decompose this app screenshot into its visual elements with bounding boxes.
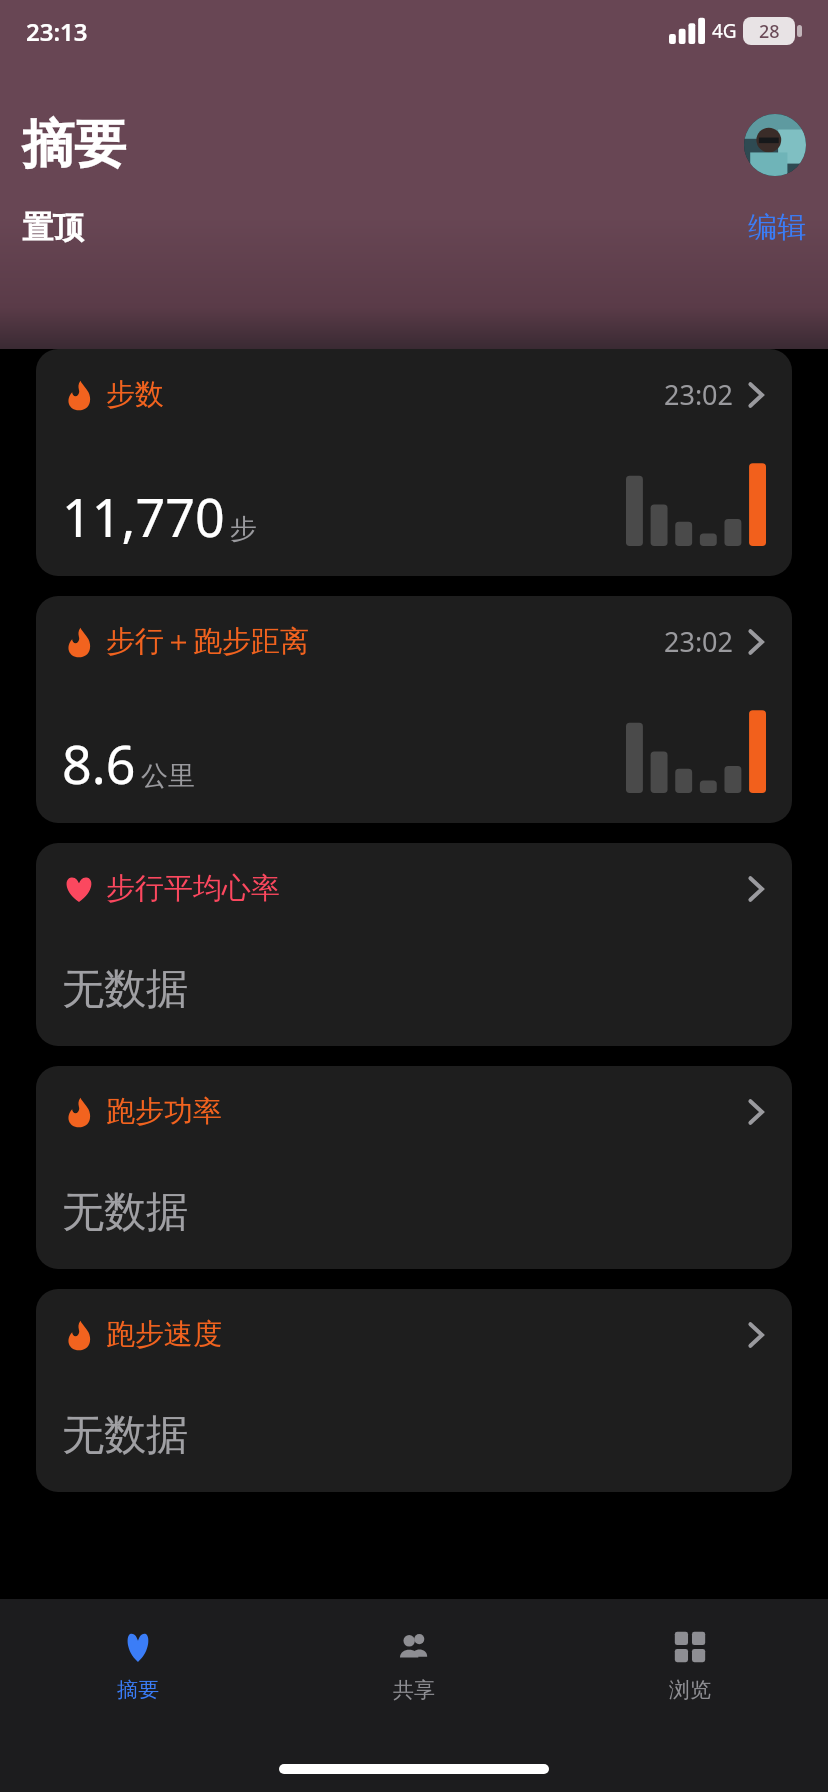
staticText: 步数 [106, 376, 164, 413]
staticText: 跑步功率 [106, 1093, 222, 1130]
staticText: 无数据 [62, 1409, 188, 1462]
staticText: 共享 [393, 1677, 435, 1703]
button[interactable]: 步数 [36, 349, 792, 576]
staticText: 28 [759, 19, 780, 44]
staticText: 步 [230, 512, 257, 546]
button[interactable]: 编辑 [748, 209, 806, 246]
staticText: 步行平均心率 [106, 870, 280, 907]
staticText: 置顶 [22, 208, 84, 247]
button[interactable]: 共享 [276, 1621, 552, 1707]
staticText: 8.6 [62, 728, 136, 799]
button[interactable]: 摘要 [0, 1621, 276, 1707]
staticText: 公里 [141, 759, 195, 793]
staticText: 23:02 [664, 376, 734, 413]
staticText: 步行＋跑步距离 [106, 623, 309, 660]
staticText: 4G [712, 18, 737, 44]
staticText: 编辑 [748, 209, 806, 246]
button[interactable]: Profile [744, 114, 806, 176]
button[interactable]: 浏览 [552, 1621, 828, 1707]
staticText: 浏览 [669, 1677, 711, 1703]
button[interactable]: 步行＋跑步距离 [36, 596, 792, 823]
staticText: 11,770 [62, 481, 225, 552]
button[interactable]: 跑步功率 [36, 1066, 792, 1269]
button[interactable]: 跑步速度 [36, 1289, 792, 1492]
staticText: 无数据 [62, 1186, 188, 1239]
staticText: 摘要 [117, 1677, 159, 1703]
staticText: 23:02 [664, 623, 734, 660]
staticText: 跑步速度 [106, 1316, 222, 1353]
staticText: 23:13 [26, 15, 88, 48]
button[interactable]: 步行平均心率 [36, 843, 792, 1046]
staticText: 无数据 [62, 963, 188, 1016]
staticText: 摘要 [22, 112, 126, 178]
